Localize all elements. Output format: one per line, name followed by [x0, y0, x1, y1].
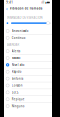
button[interactable]: Staccato	[4, 55, 52, 61]
button[interactable]: Rápido	[4, 68, 52, 75]
staticText: INTENSIDAD DE VIBRACIÓN	[7, 16, 43, 19]
button[interactable]: S.O.S.	[4, 89, 52, 96]
staticText: Alerta	[12, 49, 20, 53]
staticText: ◗	[45, 1, 46, 4]
staticText: ‹	[6, 5, 8, 12]
staticText: ESTÁNDAR	[7, 43, 20, 46]
button[interactable]: Nivel alto	[4, 62, 52, 68]
button[interactable]: Corazón	[4, 82, 52, 89]
staticText: Sinfonía	[12, 77, 23, 80]
staticText: Rápido	[12, 70, 22, 73]
staticText: S.O.S.	[12, 91, 19, 94]
staticText: 9:41	[6, 1, 13, 4]
button[interactable]: Continuo	[4, 35, 52, 41]
staticText: Nivel alto	[12, 63, 25, 67]
button[interactable]: Alerta	[4, 48, 52, 54]
button[interactable]: Back	[4, 6, 8, 11]
staticText: Staccato	[12, 56, 21, 60]
staticText: Corazón	[12, 84, 23, 87]
staticText: Continuo	[12, 36, 26, 40]
staticText: ıll	[42, 1, 45, 4]
button[interactable]: Repique	[4, 96, 52, 102]
button[interactable]: Sinfonía	[4, 75, 52, 82]
staticText: Sincronizado	[12, 29, 29, 33]
staticText: Ninguno	[12, 104, 25, 108]
button[interactable]: Ninguno	[4, 103, 52, 109]
button[interactable]: Sincronizado	[4, 28, 52, 34]
staticText: Vibración de llamada	[10, 7, 43, 10]
staticText: Repique	[12, 97, 25, 101]
